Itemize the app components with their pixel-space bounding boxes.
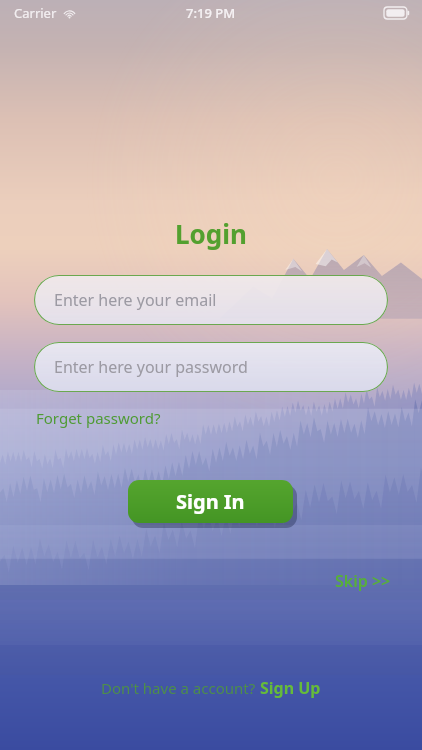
staticText: Enter here your email: [54, 289, 217, 311]
staticText: Sign In: [176, 488, 245, 515]
staticText: Carrier: [14, 4, 57, 22]
staticText: Login: [175, 216, 247, 251]
staticText: Skip >>: [335, 570, 391, 592]
button[interactable]: Enter here your password: [34, 342, 388, 392]
staticText: 7:19 PM: [186, 4, 236, 22]
staticText: Forget password?: [36, 408, 161, 428]
button[interactable]: Sign In: [128, 480, 293, 523]
staticText: Enter here your password: [54, 356, 248, 378]
staticText: Don't have a account?: [101, 678, 260, 698]
button[interactable]: Forget password?: [34, 405, 163, 431]
staticText: Sign Up: [260, 677, 321, 699]
button[interactable]: Skip >>: [332, 567, 394, 595]
button[interactable]: Enter here your email: [34, 275, 388, 325]
button[interactable]: Don't have a account?: [95, 673, 327, 703]
